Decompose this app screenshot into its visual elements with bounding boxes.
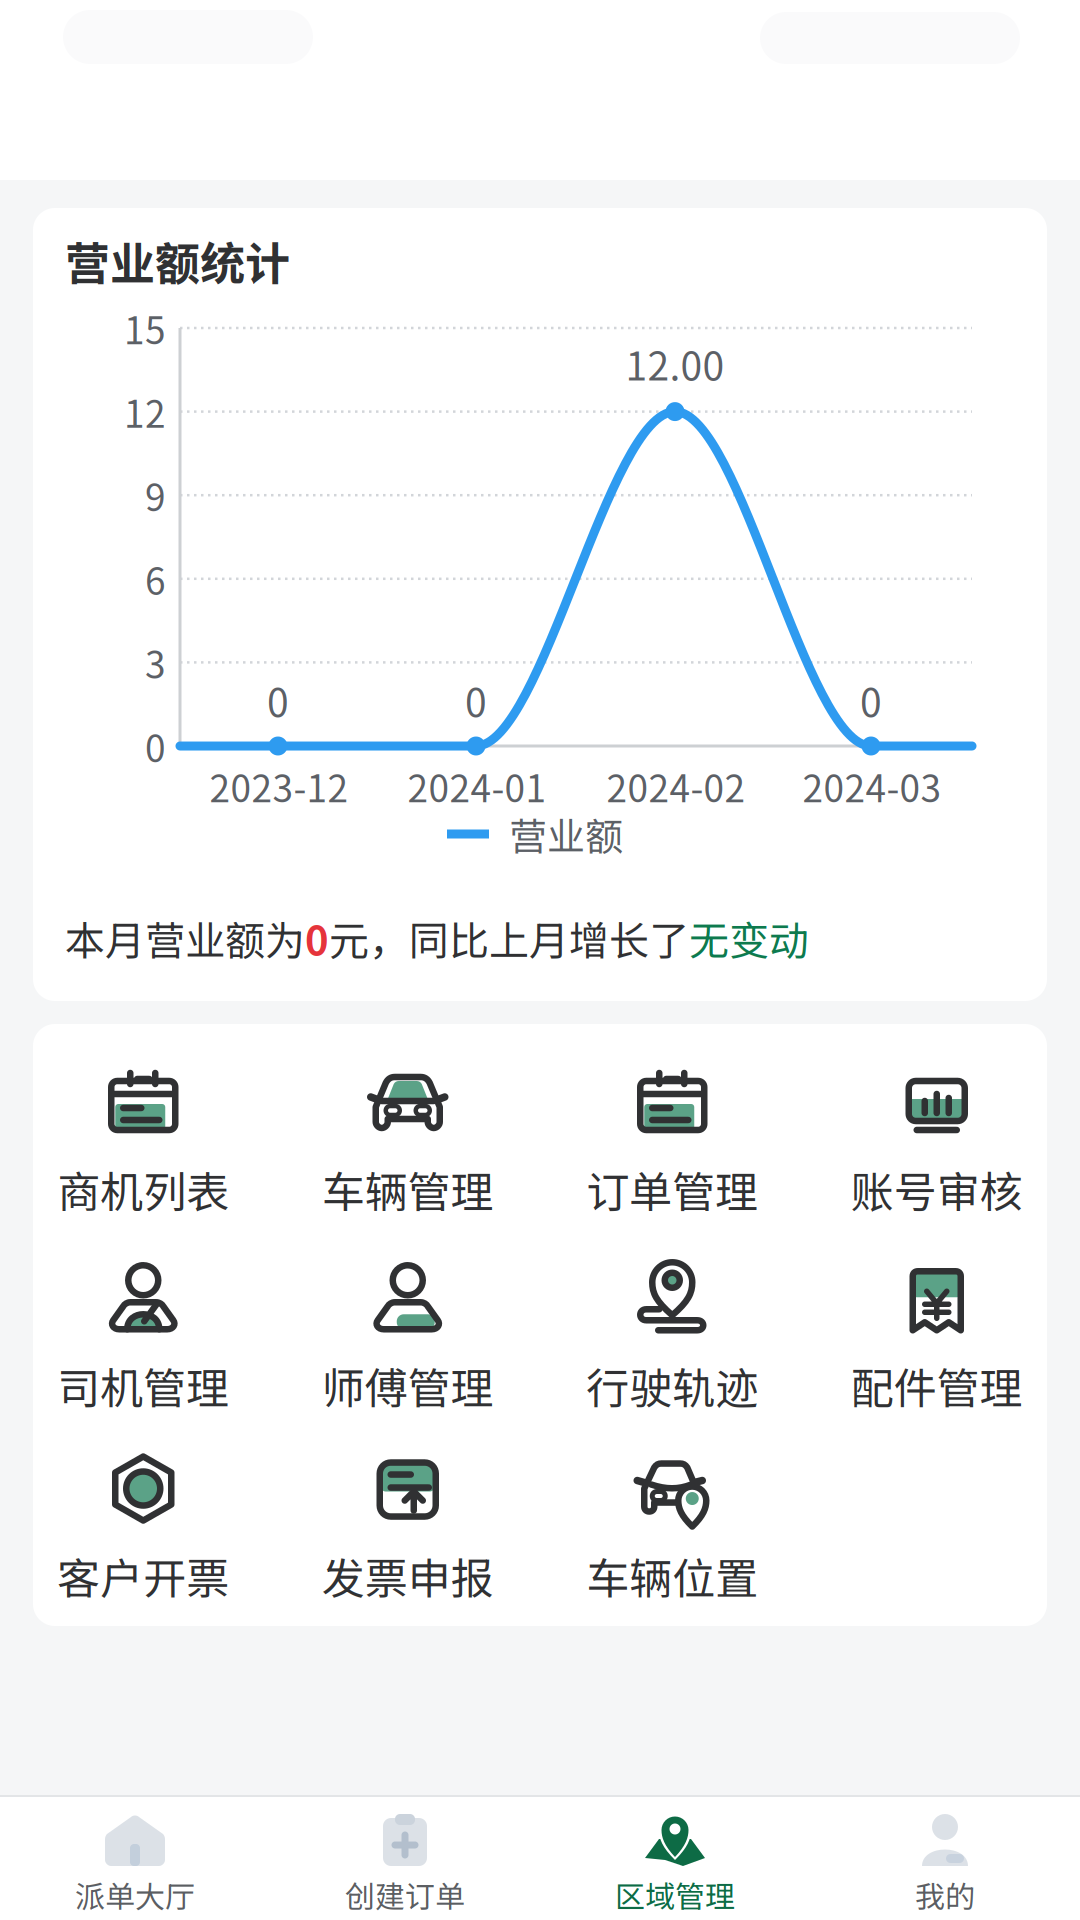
staticText: 0 <box>267 672 289 728</box>
staticText: 0 <box>145 719 166 773</box>
staticText: 创建订单 <box>345 1873 465 1916</box>
button[interactable]: 师傅管理 <box>275 1256 540 1417</box>
button[interactable]: 创建订单 <box>270 1797 540 1920</box>
staticText: 商机列表 <box>57 1158 229 1220</box>
staticText: 2023-12 <box>209 759 348 813</box>
staticText: 3 <box>145 636 166 689</box>
staticText: 客户开票 <box>57 1544 229 1607</box>
staticText: 15 <box>124 301 166 355</box>
button[interactable]: 司机管理 <box>11 1256 275 1417</box>
button[interactable]: 配件管理 <box>804 1256 1069 1417</box>
button[interactable]: 我的 <box>810 1797 1080 1920</box>
button[interactable]: 区域管理 <box>540 1797 810 1920</box>
staticText: 订单管理 <box>586 1158 758 1220</box>
staticText: 本月营业额为 <box>65 909 305 967</box>
staticText: 派单大厅 <box>75 1873 195 1916</box>
staticText: 2024-02 <box>606 759 745 813</box>
staticText: 2024-03 <box>802 759 941 813</box>
staticText: 2024-01 <box>407 759 546 813</box>
staticText: 0 <box>860 672 882 728</box>
staticText: 无变动 <box>689 909 809 967</box>
staticText: 6 <box>145 552 166 606</box>
button[interactable]: 发票申报 <box>275 1446 540 1607</box>
button[interactable]: 客户开票 <box>11 1446 275 1607</box>
staticText: 区域管理 <box>615 1873 735 1916</box>
button[interactable]: 车辆管理 <box>275 1060 540 1220</box>
staticText: 0 <box>465 672 487 728</box>
staticText: 12 <box>124 385 166 438</box>
staticText: 配件管理 <box>851 1354 1023 1417</box>
staticText: 营业额统计 <box>65 228 290 293</box>
button[interactable]: 派单大厅 <box>0 1797 270 1920</box>
staticText: 0 <box>305 909 329 967</box>
staticText: 我的 <box>915 1873 975 1916</box>
staticText: 发票申报 <box>322 1544 494 1607</box>
button[interactable]: 账号审核 <box>804 1060 1069 1220</box>
staticText: 9 <box>145 468 166 522</box>
button[interactable]: 订单管理 <box>540 1060 804 1220</box>
staticText: 车辆管理 <box>322 1158 494 1220</box>
staticText: 营业额 <box>509 806 623 861</box>
staticText: 12.00 <box>625 335 724 392</box>
staticText: 元，同比上月增长了 <box>329 909 689 967</box>
staticText: 师傅管理 <box>322 1354 494 1417</box>
button[interactable]: 商机列表 <box>11 1060 275 1220</box>
staticText: 车辆位置 <box>586 1544 758 1607</box>
button[interactable]: 行驶轨迹 <box>540 1256 804 1417</box>
staticText: 司机管理 <box>57 1354 229 1417</box>
staticText: 账号审核 <box>851 1158 1023 1220</box>
button[interactable]: 车辆位置 <box>540 1446 804 1607</box>
staticText: 行驶轨迹 <box>586 1354 758 1417</box>
